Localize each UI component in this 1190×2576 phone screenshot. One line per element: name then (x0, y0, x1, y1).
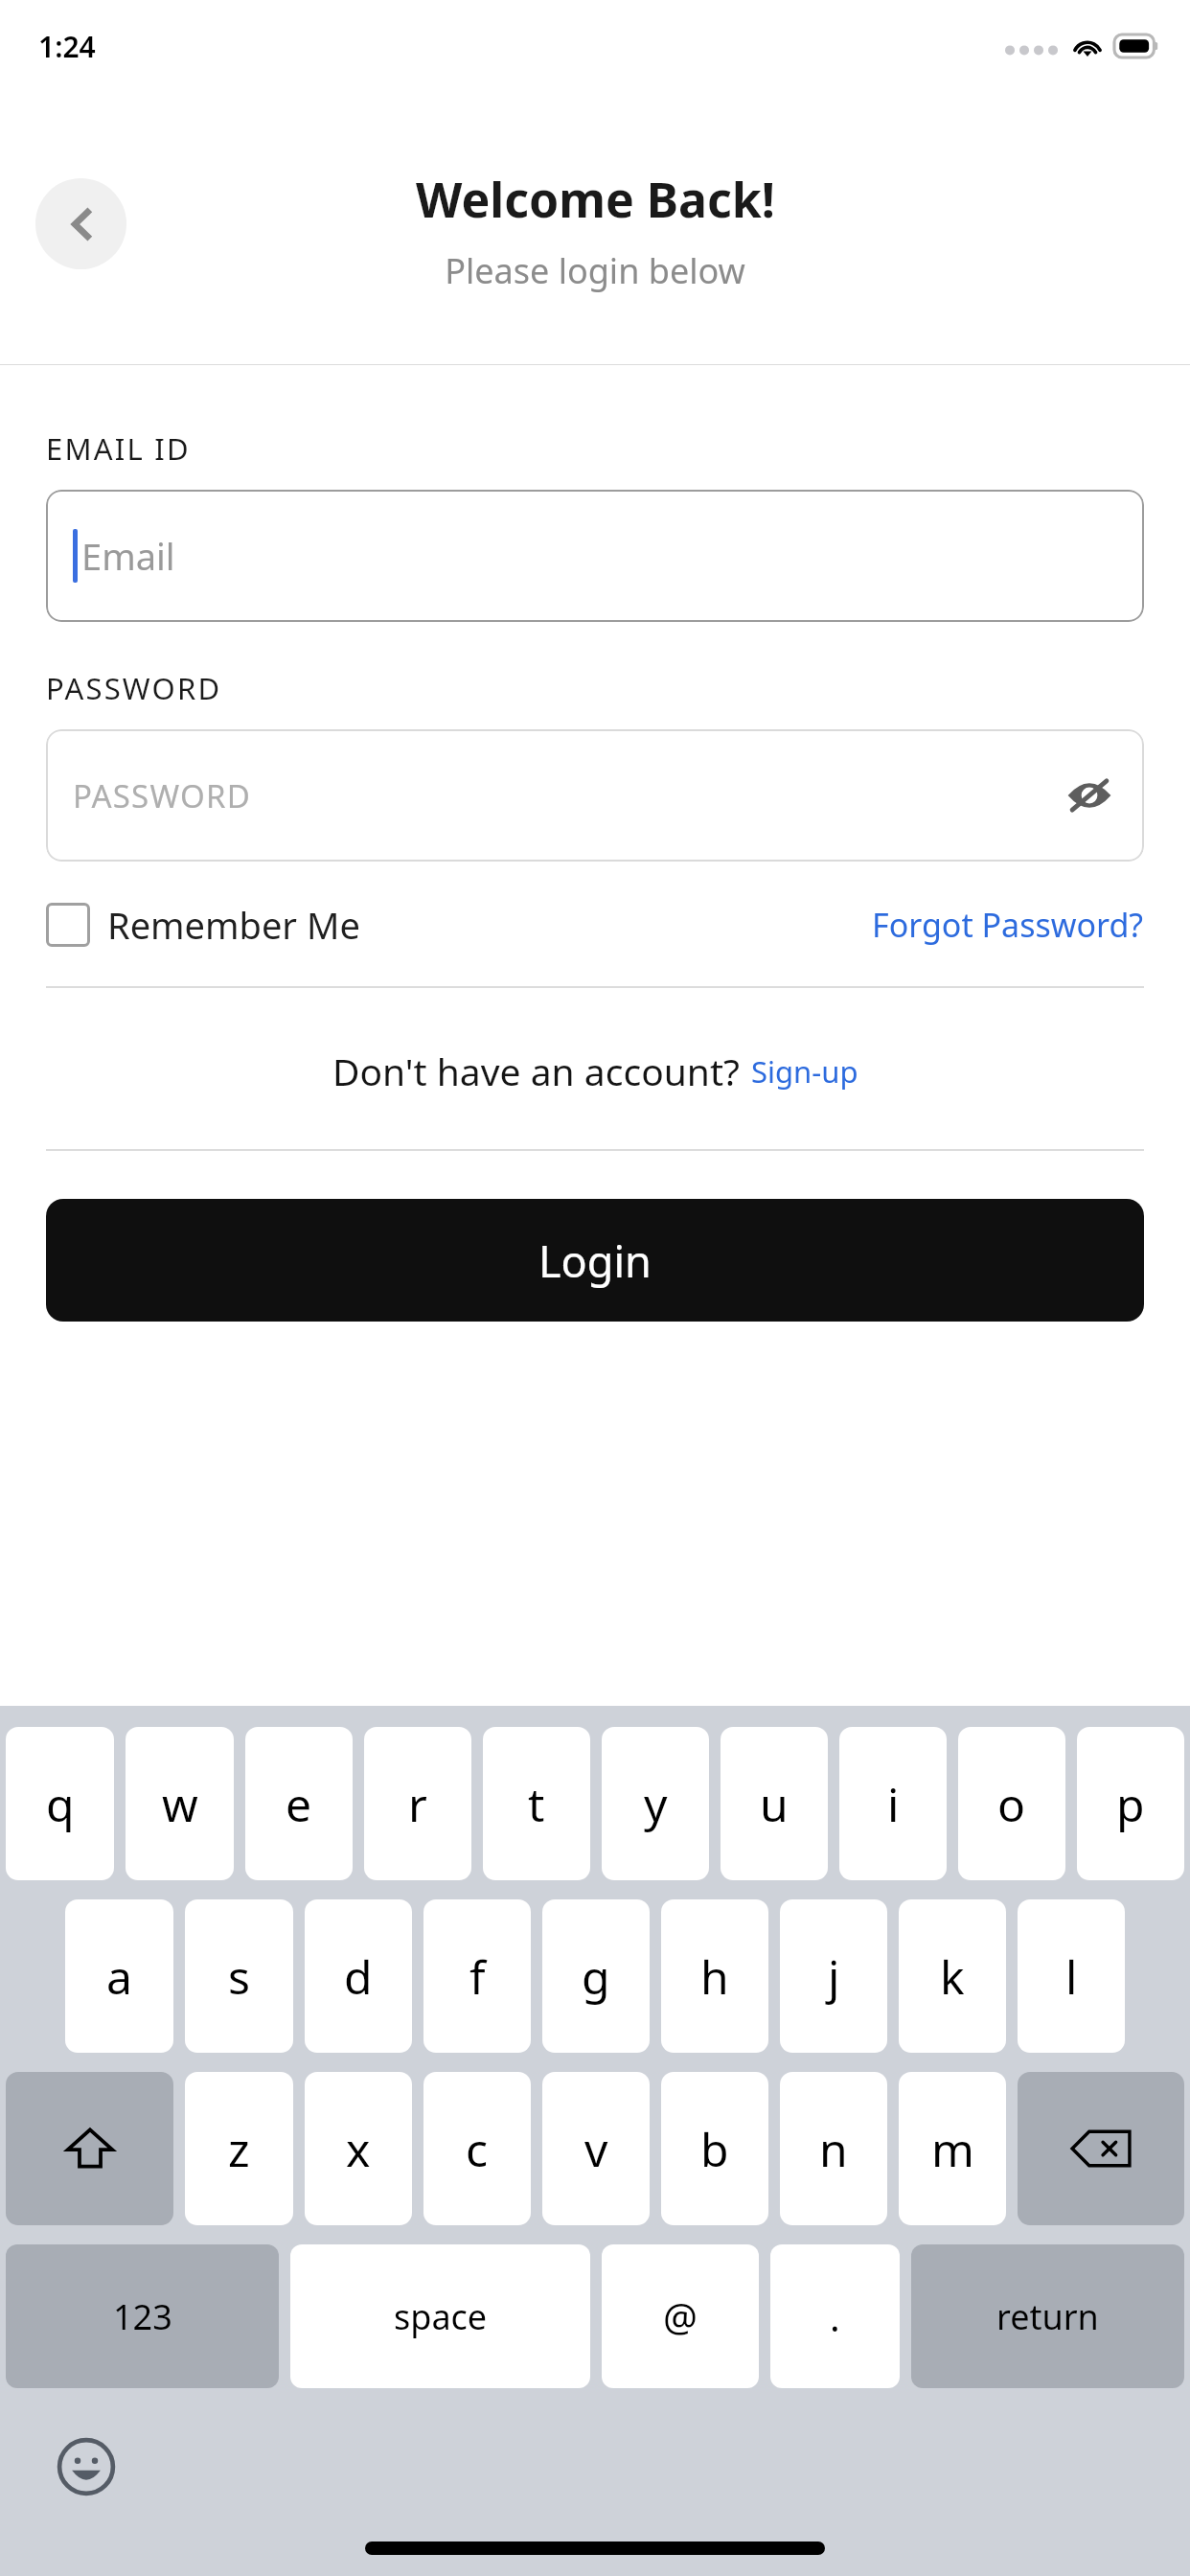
staticText: y (644, 1773, 668, 1835)
staticText: n (819, 2118, 848, 2180)
staticText: Please login below (445, 247, 745, 294)
staticText: Don't have an account? (332, 1046, 740, 1096)
button[interactable]: space (290, 2244, 590, 2388)
staticText: 123 (113, 2293, 172, 2340)
button[interactable]: j (780, 1899, 887, 2053)
button[interactable]: x (305, 2072, 412, 2225)
staticText: e (286, 1773, 312, 1835)
button[interactable]: e (245, 1727, 353, 1880)
button[interactable]: m (899, 2072, 1006, 2225)
staticText: j (828, 1945, 840, 2008)
staticText: z (228, 2118, 250, 2180)
button[interactable]: p (1077, 1727, 1184, 1880)
button[interactable]: w (126, 1727, 234, 1880)
staticText: PASSWORD (73, 774, 251, 817)
button[interactable]: z (185, 2072, 293, 2225)
staticText: v (584, 2118, 608, 2180)
staticText: Remember Me (107, 900, 360, 950)
staticText: space (394, 2293, 488, 2340)
button[interactable]: Emoji (56, 2436, 117, 2497)
button[interactable]: return (911, 2244, 1184, 2388)
button[interactable]: Sign-up (751, 1051, 858, 1092)
button[interactable]: l (1018, 1899, 1125, 2053)
staticText: w (162, 1773, 198, 1835)
staticText: Forgot Password? (872, 903, 1144, 947)
staticText: Login (538, 1231, 652, 1290)
staticText: g (582, 1945, 610, 2008)
staticText: Email (81, 531, 175, 581)
button[interactable]: 123 (6, 2244, 279, 2388)
button[interactable]: d (305, 1899, 412, 2053)
staticText: PASSWORD (46, 668, 222, 708)
button[interactable]: Backspace (1018, 2072, 1184, 2225)
staticText: o (997, 1773, 1026, 1835)
staticText: 1:24 (38, 27, 96, 66)
button[interactable]: s (185, 1899, 293, 2053)
button[interactable]: g (542, 1899, 650, 2053)
button[interactable]: Shift (6, 2072, 173, 2225)
staticText: f (469, 1945, 486, 2008)
staticText: Sign-up (751, 1051, 858, 1092)
staticText: return (996, 2293, 1099, 2340)
staticText: c (466, 2118, 489, 2180)
staticText: m (931, 2118, 974, 2180)
staticText: a (106, 1945, 132, 2008)
button[interactable]: . (770, 2244, 900, 2388)
button[interactable]: u (721, 1727, 828, 1880)
button[interactable]: f (423, 1899, 531, 2053)
button[interactable]: i (839, 1727, 947, 1880)
button[interactable]: q (6, 1727, 114, 1880)
staticText: h (700, 1945, 729, 2008)
button[interactable]: Forgot Password? (872, 903, 1144, 947)
staticText: r (408, 1773, 427, 1835)
staticText: EMAIL ID (46, 428, 191, 469)
staticText: b (700, 2118, 729, 2180)
button[interactable]: h (661, 1899, 768, 2053)
staticText: i (887, 1773, 900, 1835)
button[interactable]: Email (46, 490, 1144, 622)
staticText: u (760, 1773, 789, 1835)
button[interactable]: Remember Me (46, 900, 360, 950)
staticText: . (830, 2290, 840, 2342)
button[interactable]: Show password (1052, 758, 1127, 833)
staticText: q (46, 1773, 75, 1835)
staticText: l (1065, 1945, 1078, 2008)
staticText: k (940, 1945, 965, 2008)
staticText: @ (663, 2290, 698, 2342)
button[interactable]: c (423, 2072, 531, 2225)
button[interactable]: r (364, 1727, 471, 1880)
staticText: p (1116, 1773, 1145, 1835)
button[interactable]: k (899, 1899, 1006, 2053)
button[interactable]: v (542, 2072, 650, 2225)
button[interactable]: b (661, 2072, 768, 2225)
staticText: s (228, 1945, 250, 2008)
staticText: Welcome Back! (416, 167, 775, 232)
button[interactable]: @ (602, 2244, 759, 2388)
button[interactable]: PASSWORD (46, 729, 1144, 862)
button[interactable]: y (602, 1727, 709, 1880)
button[interactable]: n (780, 2072, 887, 2225)
button[interactable]: t (483, 1727, 590, 1880)
button[interactable]: Back (35, 178, 126, 269)
staticText: x (346, 2118, 371, 2180)
staticText: d (344, 1945, 373, 2008)
button[interactable]: Login (46, 1199, 1144, 1322)
button[interactable]: o (958, 1727, 1065, 1880)
staticText: t (528, 1773, 545, 1835)
button[interactable]: a (65, 1899, 173, 2053)
